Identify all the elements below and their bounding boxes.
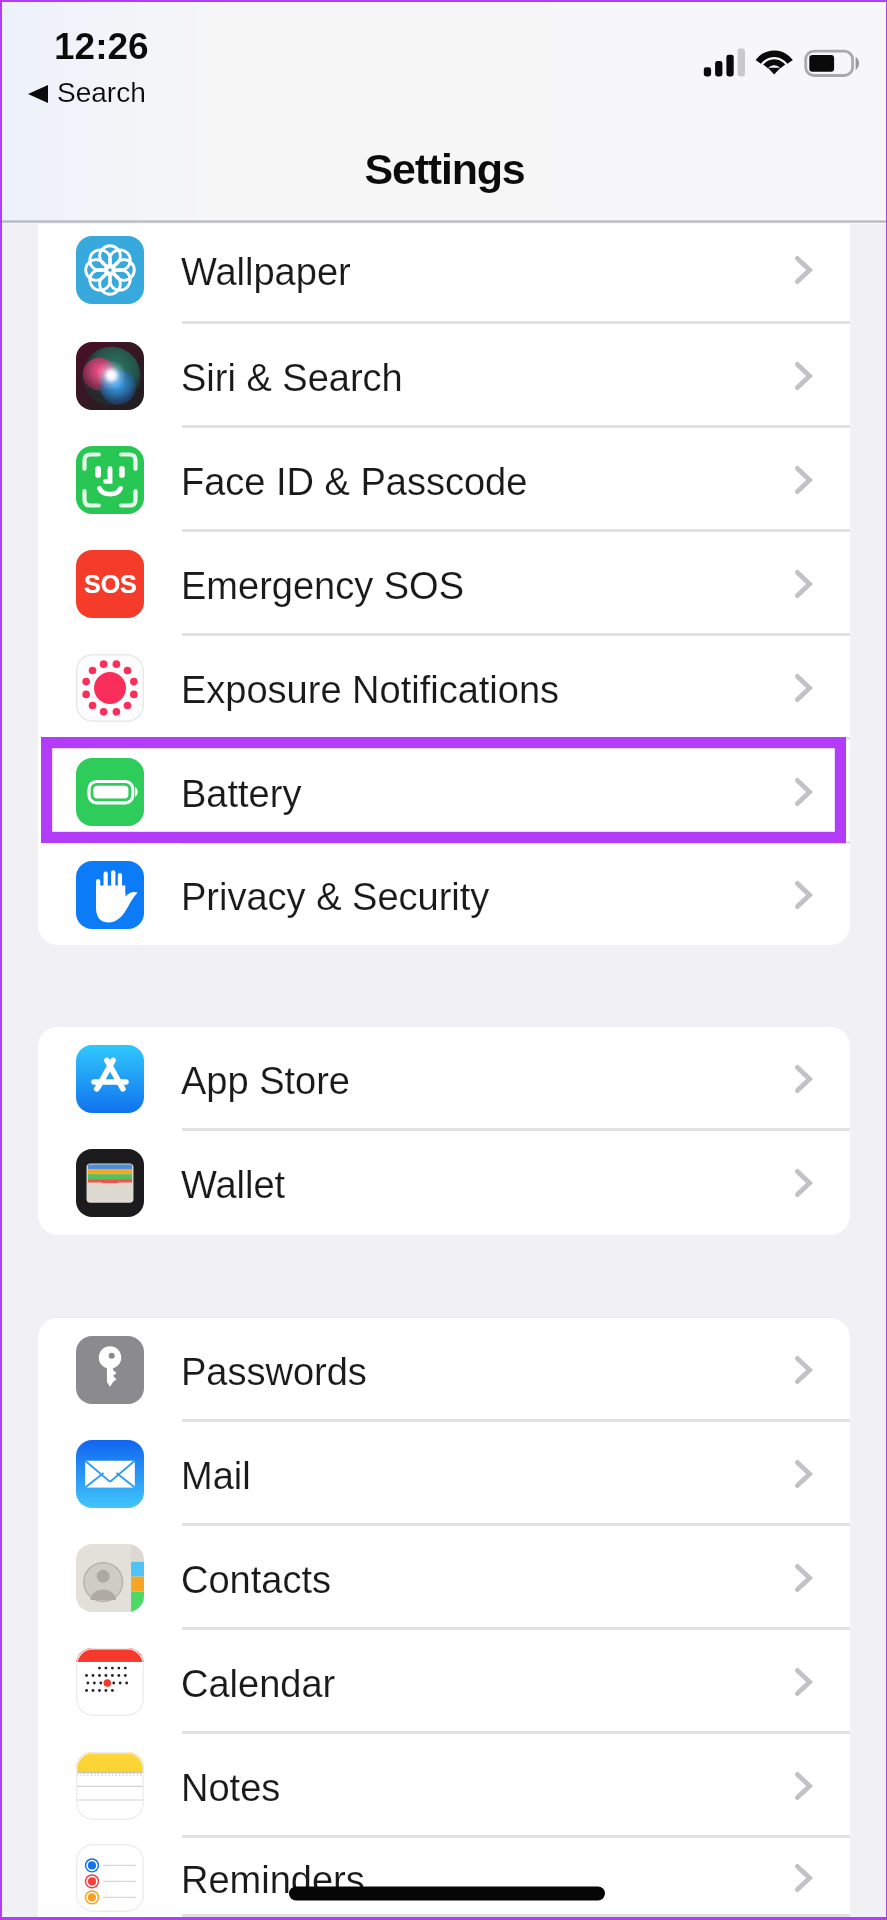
button[interactable]: Contacts [38, 1526, 850, 1630]
staticText: Notes [181, 1767, 281, 1809]
staticText: Face ID & Passcode [181, 461, 528, 503]
staticText: Search [57, 77, 146, 108]
button[interactable]: Notes [38, 1734, 850, 1838]
button[interactable]: Battery [38, 740, 850, 844]
staticText: Mail [181, 1455, 251, 1497]
button[interactable]: Siri & Search [38, 324, 850, 428]
staticText: Wallet [181, 1164, 286, 1206]
button[interactable]: Exposure Notifications [38, 636, 850, 740]
button[interactable]: Wallpaper [38, 224, 850, 324]
staticText: Siri & Search [181, 357, 403, 399]
button[interactable]: Privacy & Security [38, 844, 850, 945]
staticText: 12:26 [54, 26, 149, 67]
button[interactable]: Wallet [38, 1131, 850, 1235]
staticText: Exposure Notifications [181, 669, 560, 711]
button[interactable]: SOS [38, 532, 850, 636]
staticText: Emergency SOS [181, 565, 464, 607]
button[interactable]: Reminders [38, 1838, 850, 1917]
staticText: Contacts [181, 1559, 331, 1601]
button[interactable]: Search [28, 78, 146, 109]
staticText: Settings [364, 145, 525, 193]
button[interactable]: Passwords [38, 1318, 850, 1422]
staticText: Passwords [181, 1351, 367, 1393]
staticText: Battery [181, 773, 302, 815]
staticText: Calendar [181, 1663, 336, 1705]
staticText: Privacy & Security [181, 876, 490, 918]
button[interactable]: Mail [38, 1422, 850, 1526]
button[interactable]: Calendar [38, 1630, 850, 1734]
staticText: App Store [181, 1060, 350, 1102]
button[interactable]: App Store [38, 1027, 850, 1131]
button[interactable]: Face ID & Passcode [38, 428, 850, 532]
staticText: SOS [84, 570, 137, 598]
staticText: Reminders [181, 1859, 365, 1901]
staticText: Wallpaper [181, 251, 351, 293]
